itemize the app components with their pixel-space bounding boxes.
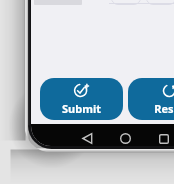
staticText: Submit	[62, 101, 101, 116]
button[interactable]: Back	[77, 128, 98, 146]
button[interactable]: Recent apps	[153, 128, 174, 146]
button[interactable]: Home	[115, 128, 136, 146]
button[interactable]	[146, 0, 174, 5]
button[interactable]: Reset	[128, 78, 174, 120]
staticText: Reset	[154, 101, 174, 116]
button[interactable]	[111, 0, 141, 5]
button[interactable]: Submit	[40, 78, 123, 120]
